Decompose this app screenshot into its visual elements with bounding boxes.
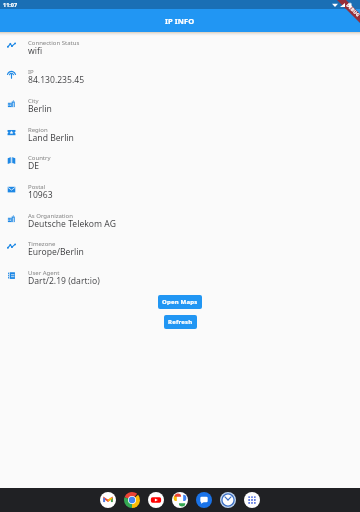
staticText: User Agent: [28, 269, 60, 277]
button[interactable]: Postal: [0, 179, 360, 207]
button[interactable]: Connection Status: [0, 35, 360, 63]
staticText: Open Maps: [162, 298, 198, 306]
staticText: Connection Status: [28, 39, 80, 47]
staticText: IP: [28, 68, 34, 76]
staticText: Timezone: [28, 240, 56, 248]
button[interactable]: Country: [0, 150, 360, 178]
button[interactable]: Region: [0, 122, 360, 150]
button[interactable]: photos: [172, 492, 188, 508]
button[interactable]: Refresh: [164, 315, 197, 329]
button[interactable]: gmail: [100, 492, 116, 508]
staticText: Postal: [28, 183, 46, 191]
staticText: Dart/2.19 (dart:io): [28, 275, 100, 287]
staticText: DE: [28, 160, 40, 172]
button[interactable]: IP: [0, 64, 360, 92]
staticText: As Organization: [28, 212, 73, 220]
button[interactable]: drawer: [244, 492, 260, 508]
staticText: DEBUG: [345, 2, 360, 18]
staticText: Deutsche Telekom AG: [28, 218, 116, 230]
staticText: 10963: [28, 189, 53, 201]
button[interactable]: As Organization: [0, 208, 360, 236]
staticText: wifi: [28, 45, 43, 57]
button[interactable]: clock: [220, 492, 236, 508]
button[interactable]: City: [0, 93, 360, 121]
staticText: Refresh: [168, 318, 193, 326]
staticText: City: [28, 97, 39, 105]
staticText: Country: [28, 154, 51, 162]
staticText: 84.130.235.45: [28, 74, 85, 86]
button[interactable]: chrome: [124, 492, 140, 508]
button[interactable]: User Agent: [0, 265, 360, 293]
staticText: IP INFO: [165, 16, 195, 26]
button[interactable]: youtube: [148, 492, 164, 508]
staticText: Berlin: [28, 103, 52, 115]
staticText: 11:07: [3, 1, 18, 8]
button[interactable]: Open Maps: [158, 295, 202, 309]
staticText: Europe/Berlin: [28, 246, 84, 258]
button[interactable]: Timezone: [0, 236, 360, 264]
staticText: Region: [28, 126, 48, 134]
staticText: Land Berlin: [28, 132, 74, 144]
button[interactable]: messages: [196, 492, 212, 508]
